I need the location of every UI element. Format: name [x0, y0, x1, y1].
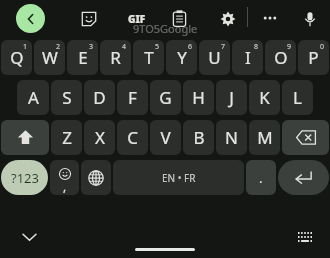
staticText: E — [78, 46, 88, 69]
button[interactable]: A — [17, 80, 49, 115]
button[interactable]: Space — [113, 160, 244, 195]
staticText: , — [63, 178, 67, 194]
staticText: 0 — [320, 42, 325, 52]
staticText: 2 — [56, 42, 61, 52]
button[interactable]: Y — [166, 40, 197, 75]
staticText: Z — [62, 126, 72, 149]
staticText: G — [159, 86, 172, 109]
button[interactable]: U — [199, 40, 230, 75]
button[interactable]: Hide keyboard — [20, 228, 38, 246]
staticText: 4 — [122, 42, 127, 52]
button[interactable]: Settings — [218, 9, 237, 28]
button[interactable]: H — [183, 80, 214, 115]
button[interactable]: Q — [1, 40, 32, 75]
staticText: T — [144, 46, 154, 69]
staticText: . — [259, 169, 263, 187]
button[interactable]: T — [133, 40, 164, 75]
staticText: L — [293, 86, 302, 109]
staticText: EN • FR — [162, 171, 196, 185]
button[interactable]: I — [232, 40, 263, 75]
staticText: J — [229, 86, 234, 109]
staticText: 3 — [89, 42, 94, 52]
button[interactable]: Backspace — [282, 120, 329, 155]
button[interactable]: V — [150, 120, 181, 155]
staticText: X — [95, 126, 105, 149]
staticText: 1 — [23, 42, 28, 52]
staticText: H — [192, 86, 205, 109]
button[interactable]: G — [150, 80, 181, 115]
staticText: P — [308, 46, 319, 69]
staticText: Q — [10, 46, 24, 69]
button[interactable]: Stickers — [80, 10, 98, 28]
button[interactable]: L — [282, 80, 313, 115]
button[interactable]: Period — [246, 160, 276, 195]
button[interactable]: ?123 — [1, 160, 48, 195]
button[interactable]: Back — [16, 4, 45, 33]
staticText: S — [62, 86, 72, 109]
staticText: D — [93, 86, 106, 109]
button[interactable]: F — [117, 80, 148, 115]
staticText: I — [245, 46, 251, 69]
staticText: M — [257, 126, 273, 149]
staticText: C — [127, 126, 138, 149]
button[interactable]: K — [249, 80, 280, 115]
staticText: O — [274, 46, 288, 69]
staticText: V — [160, 126, 171, 149]
button[interactable]: GIF — [125, 10, 149, 28]
button[interactable]: Change language — [81, 160, 111, 195]
staticText: B — [193, 126, 205, 149]
staticText: GIF — [128, 12, 146, 26]
staticText: ?123 — [11, 169, 39, 187]
button[interactable]: J — [216, 80, 247, 115]
button[interactable]: Emoji — [50, 160, 79, 195]
staticText: 9TO5Google — [133, 21, 198, 36]
staticText: 8 — [254, 42, 259, 52]
button[interactable]: More options — [258, 9, 282, 27]
button[interactable]: N — [216, 120, 247, 155]
staticText: 5 — [155, 42, 160, 52]
button[interactable]: R — [100, 40, 131, 75]
button[interactable]: C — [117, 120, 148, 155]
staticText: W — [42, 46, 58, 69]
button[interactable]: Enter — [278, 160, 329, 195]
button[interactable]: M — [249, 120, 280, 155]
staticText: R — [110, 46, 121, 69]
staticText: N — [225, 126, 238, 149]
button[interactable]: W — [34, 40, 65, 75]
button[interactable]: Shift — [1, 120, 49, 155]
button[interactable]: O — [265, 40, 296, 75]
button[interactable]: P — [298, 40, 329, 75]
staticText: 6 — [188, 42, 193, 52]
staticText: F — [128, 86, 137, 109]
button[interactable]: Clipboard — [170, 9, 189, 28]
button[interactable]: Voice input — [300, 9, 319, 28]
staticText: U — [208, 46, 221, 69]
button[interactable]: Switch keyboard — [296, 228, 314, 246]
button[interactable]: Z — [51, 120, 82, 155]
staticText: K — [259, 86, 270, 109]
staticText: Y — [177, 46, 187, 69]
staticText: 7 — [221, 42, 226, 52]
staticText: 9 — [287, 42, 292, 52]
staticText: A — [28, 86, 39, 109]
button[interactable]: D — [84, 80, 115, 115]
button[interactable]: S — [51, 80, 82, 115]
button[interactable]: E — [67, 40, 98, 75]
button[interactable]: X — [84, 120, 115, 155]
button[interactable]: B — [183, 120, 214, 155]
